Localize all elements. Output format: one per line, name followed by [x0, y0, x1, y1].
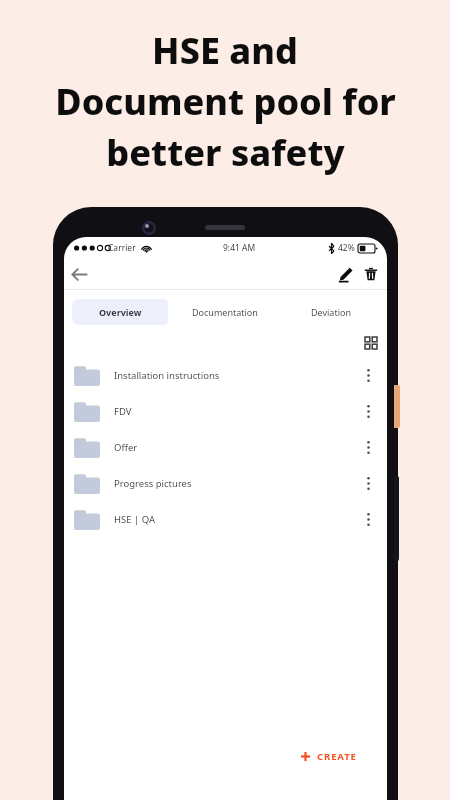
button[interactable]: HSE | QA — [64, 501, 387, 537]
staticText: Overview — [99, 306, 142, 318]
staticText: Document pool for — [55, 77, 396, 126]
button[interactable]: Installation instructions — [64, 357, 387, 393]
staticText: FDV — [114, 405, 132, 418]
staticText: Carrier — [108, 242, 136, 254]
staticText: Offer — [114, 441, 138, 454]
staticText: Deviation — [311, 306, 351, 318]
button[interactable]: Grid view — [363, 331, 379, 355]
button[interactable]: CREATE — [283, 741, 375, 772]
staticText: Progress pictures — [114, 477, 192, 490]
button[interactable]: More options — [357, 364, 379, 386]
button[interactable]: Offer — [64, 429, 387, 465]
button[interactable]: Deviation — [282, 299, 379, 325]
button[interactable]: Progress pictures — [64, 465, 387, 501]
button[interactable]: Delete — [359, 260, 383, 288]
button[interactable]: More options — [357, 508, 379, 530]
button[interactable]: More options — [357, 436, 379, 458]
staticText: HSE and — [152, 26, 298, 75]
button[interactable]: FDV — [64, 393, 387, 429]
button[interactable]: Overview — [72, 299, 168, 325]
button[interactable]: More options — [357, 472, 379, 494]
button[interactable]: Edit — [331, 260, 359, 288]
staticText: 42% — [338, 242, 355, 254]
staticText: HSE | QA — [114, 513, 156, 526]
staticText: better safety — [106, 128, 345, 177]
button[interactable]: More options — [357, 400, 379, 422]
staticText: Documentation — [192, 306, 258, 318]
staticText: CREATE — [317, 750, 357, 763]
staticText: Installation instructions — [114, 369, 220, 382]
button[interactable]: Documentation — [168, 299, 282, 325]
staticText: 9:41 AM — [223, 242, 256, 254]
button[interactable]: Back — [64, 259, 94, 289]
